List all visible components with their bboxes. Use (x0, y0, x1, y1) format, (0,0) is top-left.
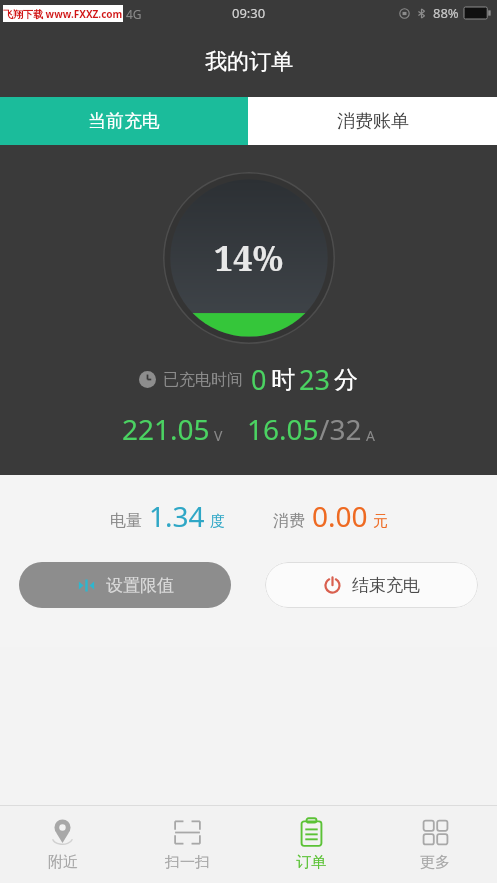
staticText: 88% (433, 4, 459, 22)
staticText: 14% (214, 235, 284, 281)
staticText: V (214, 426, 223, 445)
staticText: 消费 (273, 511, 305, 531)
staticText: 0.00 (312, 497, 368, 535)
staticText: 电量 (110, 511, 142, 531)
staticText: 221.05 (122, 410, 210, 448)
staticText: 09:30 (232, 4, 266, 22)
staticText: 扫一扫 (165, 853, 210, 872)
staticText: 订单 (296, 853, 326, 872)
button[interactable]: 结束充电 (265, 562, 478, 608)
staticText: 度 (210, 512, 225, 531)
staticText: 我的订单 (205, 48, 293, 76)
staticText: 设置限值 (106, 575, 174, 596)
staticText: 4G (126, 6, 142, 22)
button[interactable]: 当前充电 (0, 97, 248, 145)
staticText: 16.05 (247, 410, 319, 448)
staticText: 1.34 (149, 497, 205, 535)
staticText: 消费账单 (337, 110, 409, 133)
button[interactable]: Nearby (0, 806, 125, 883)
staticText: 已充电时间 (163, 370, 243, 390)
staticText: A (366, 426, 375, 445)
button[interactable]: More (373, 806, 497, 883)
staticText: 时 (271, 365, 295, 395)
staticText: 元 (373, 512, 388, 531)
staticText: 当前充电 (88, 110, 160, 133)
staticText: 分 (334, 365, 358, 395)
staticText: 飞翔下载 www.FXXZ.com (3, 7, 123, 21)
staticText: 23 (299, 361, 330, 398)
button[interactable]: 设置限值 (19, 562, 231, 608)
button[interactable]: Orders (249, 806, 373, 883)
staticText: /32 (319, 410, 362, 448)
button[interactable]: 消费账单 (248, 97, 497, 145)
staticText: 更多 (420, 853, 450, 872)
button[interactable]: Scan (125, 806, 249, 883)
staticText: 结束充电 (352, 575, 420, 596)
staticText: 0 (251, 361, 267, 398)
staticText: 附近 (48, 853, 78, 872)
